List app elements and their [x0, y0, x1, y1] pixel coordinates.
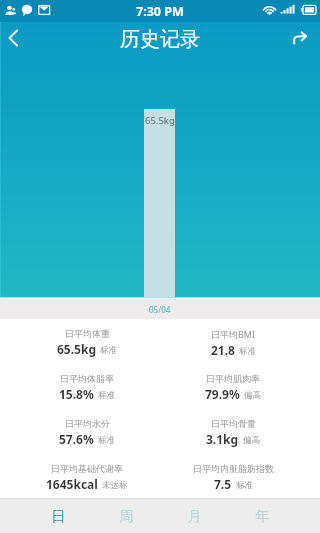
staticText: 日平均基础代谢率: [51, 463, 123, 474]
staticText: 日: [51, 507, 66, 525]
button[interactable]: 日: [24, 499, 92, 533]
button[interactable]: 年: [228, 499, 296, 533]
staticText: 日平均内脏脂肪指数: [193, 463, 274, 474]
staticText: 标准: [239, 346, 256, 357]
staticText: 周: [119, 507, 134, 525]
button[interactable]: 日平均肌肉率: [160, 371, 306, 416]
button[interactable]: 日平均骨量: [160, 416, 306, 461]
button[interactable]: Back: [0, 22, 28, 57]
button[interactable]: 日平均水分: [14, 416, 160, 461]
button[interactable]: 日平均体重: [14, 326, 160, 371]
staticText: 57.6%: [59, 431, 94, 447]
staticText: 7.5: [214, 476, 232, 492]
staticText: 标准: [236, 480, 253, 491]
staticText: 79.9%: [205, 386, 240, 402]
button[interactable]: 周: [92, 499, 160, 533]
button[interactable]: 日平均体脂率: [14, 371, 160, 416]
button[interactable]: 日平均内脏脂肪指数: [160, 461, 306, 498]
staticText: 历史记录: [120, 27, 200, 52]
staticText: 月: [187, 507, 202, 525]
staticText: 15.8%: [59, 386, 94, 402]
staticText: 21.8: [211, 342, 235, 358]
staticText: 标准: [98, 435, 115, 446]
button[interactable]: 日平均基础代谢率: [14, 461, 160, 498]
staticText: 05/04: [149, 304, 171, 315]
staticText: 日平均骨量: [211, 418, 256, 429]
staticText: 7:30 PM: [136, 3, 184, 20]
staticText: 3.1kg: [206, 431, 239, 447]
staticText: 65.5kg: [57, 341, 96, 357]
button[interactable]: 日平均BMI: [160, 326, 306, 371]
staticText: 1645kcal: [46, 476, 98, 492]
staticText: 标准: [98, 390, 115, 401]
staticText: 未达标: [102, 480, 128, 491]
staticText: 年: [255, 507, 270, 525]
staticText: 日平均体重: [65, 328, 110, 339]
button[interactable]: Share: [280, 22, 320, 57]
staticText: 日平均体脂率: [60, 373, 114, 384]
staticText: 偏高: [244, 390, 261, 401]
staticText: 偏高: [243, 435, 260, 446]
staticText: 日平均肌肉率: [206, 373, 260, 384]
staticText: 标准: [100, 345, 117, 356]
staticText: 日平均BMI: [211, 328, 256, 340]
button[interactable]: 月: [160, 499, 228, 533]
staticText: 日平均水分: [65, 418, 110, 429]
staticText: 65.5kg: [145, 114, 175, 127]
